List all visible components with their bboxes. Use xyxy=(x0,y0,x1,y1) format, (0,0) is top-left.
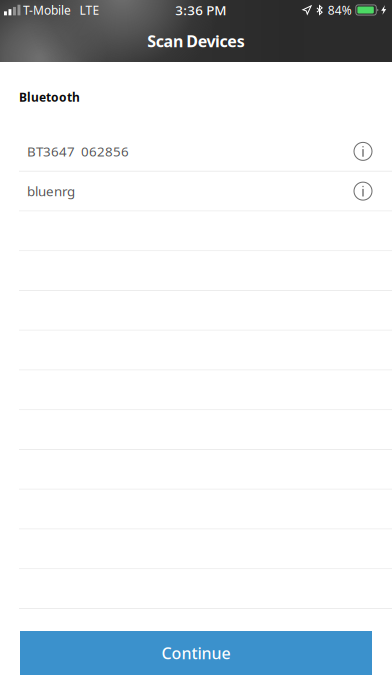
button[interactable]: Continue xyxy=(20,631,372,675)
staticText: bluenrg xyxy=(27,182,75,200)
button[interactable]: bluenrg xyxy=(0,172,392,212)
staticText: 3:36 PM xyxy=(175,1,226,19)
staticText: BT3647 062856 xyxy=(27,142,129,160)
staticText: 84% xyxy=(328,2,352,18)
staticText: T-Mobile xyxy=(23,2,71,18)
staticText: Scan Devices xyxy=(147,30,245,52)
button[interactable]: BT3647 062856 xyxy=(0,132,392,172)
staticText: Bluetooth xyxy=(19,89,80,105)
staticText: Continue xyxy=(161,642,230,664)
staticText: LTE xyxy=(79,2,99,18)
